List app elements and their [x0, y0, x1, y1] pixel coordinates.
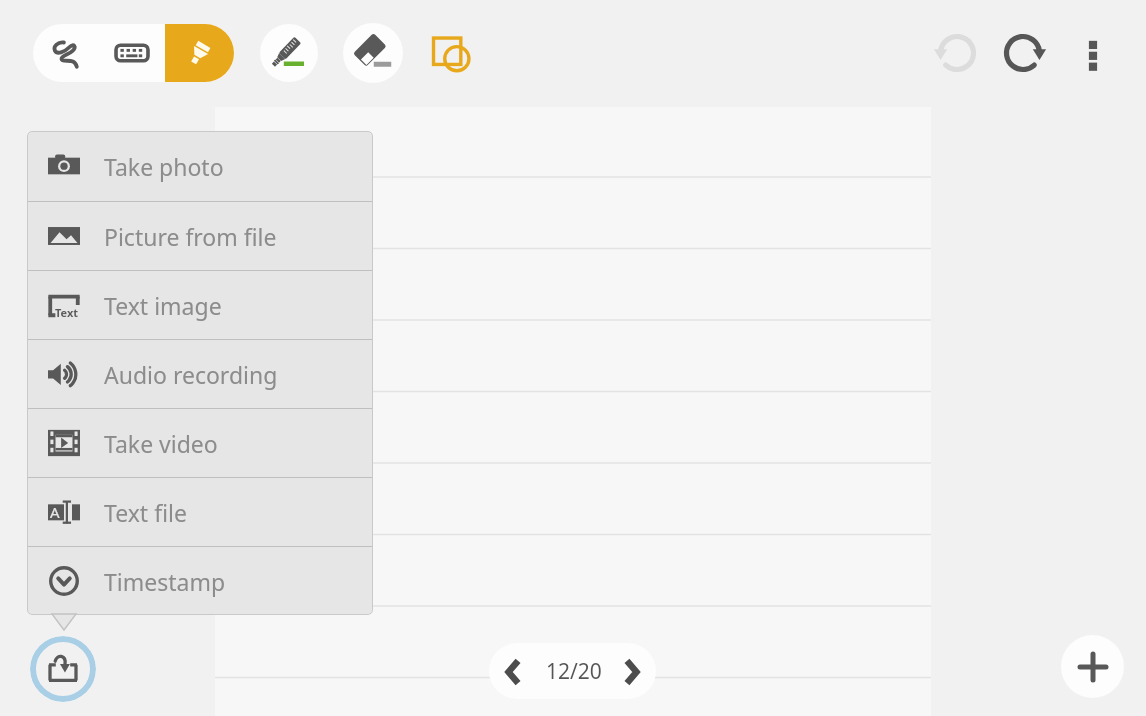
staticText: A [50, 502, 60, 522]
button[interactable]: More options [1065, 25, 1121, 81]
button[interactable]: Take photo [27, 131, 373, 201]
staticText: Take photo [104, 151, 224, 182]
button[interactable]: Audio recording [27, 340, 373, 408]
button[interactable]: Eraser [343, 23, 403, 83]
button[interactable]: Redo [995, 25, 1051, 81]
button[interactable]: Picture from file [27, 202, 373, 270]
staticText: 12/20 [546, 657, 602, 686]
button[interactable]: Add page [1061, 635, 1124, 698]
button[interactable]: Take video [27, 409, 373, 477]
button[interactable]: Highlighter [165, 24, 234, 82]
staticText: Take video [104, 428, 218, 459]
button[interactable]: Keyboard [99, 24, 165, 82]
button[interactable]: Text [27, 271, 373, 339]
button[interactable]: Import page [30, 636, 96, 702]
button[interactable]: Marker [260, 24, 318, 82]
staticText: Picture from file [104, 221, 277, 252]
button[interactable]: Shapes [425, 26, 479, 80]
button[interactable]: Timestamp [27, 547, 373, 615]
staticText: Text [55, 305, 79, 320]
button[interactable]: Pen [33, 24, 99, 82]
button[interactable]: Undo [929, 25, 985, 81]
staticText: Timestamp [104, 566, 226, 597]
button[interactable]: 12/20 [489, 643, 656, 699]
staticText: Text file [104, 497, 187, 528]
staticText: Audio recording [104, 359, 278, 390]
staticText: Text image [104, 290, 222, 321]
button[interactable]: A [27, 478, 373, 546]
